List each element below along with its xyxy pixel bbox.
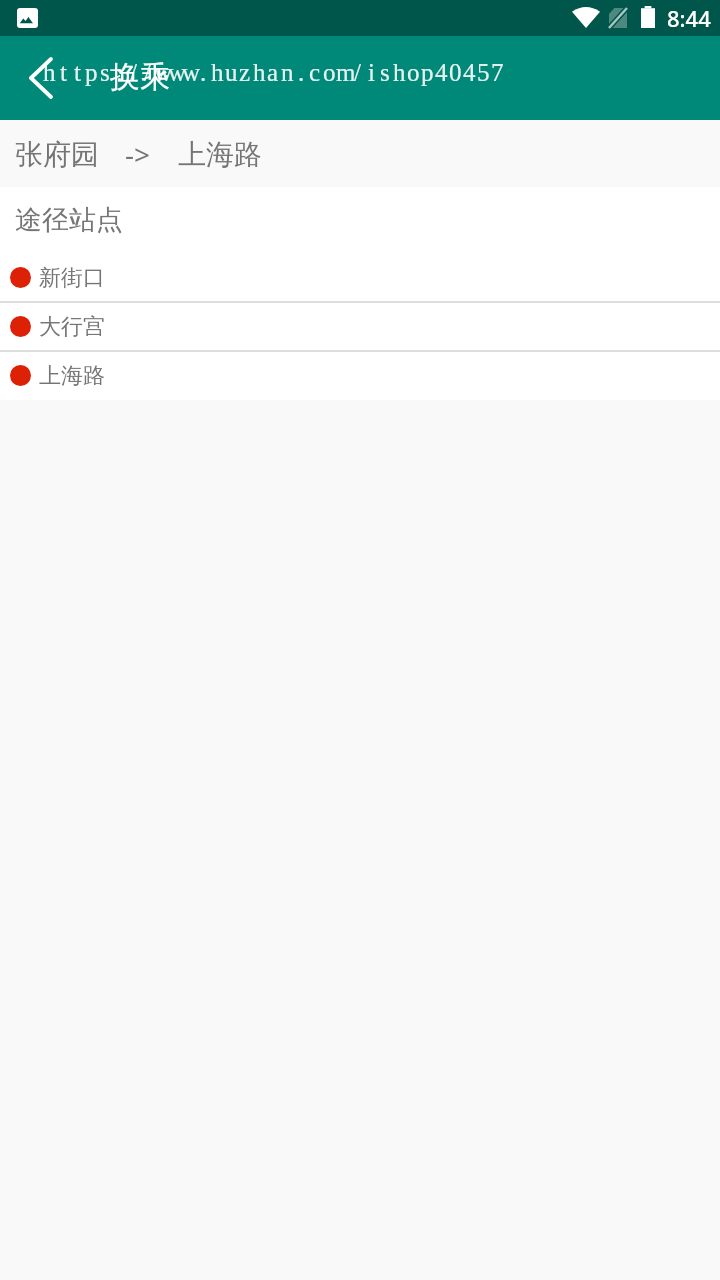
button[interactable]: 张府园 xyxy=(0,120,720,187)
staticText: o xyxy=(407,59,420,87)
button[interactable]: 大行宫 xyxy=(0,302,720,351)
staticText: 4 xyxy=(463,59,476,87)
staticText: h xyxy=(393,59,406,87)
staticText: i xyxy=(368,59,375,87)
staticText: h xyxy=(43,59,56,87)
staticText: 4 xyxy=(435,59,448,87)
staticText: t xyxy=(60,59,67,87)
staticText: h xyxy=(253,59,266,87)
staticText: s xyxy=(100,59,110,87)
staticText: 7 xyxy=(491,59,504,87)
staticText: 新街口 xyxy=(39,264,105,292)
button[interactable]: Back xyxy=(0,36,68,120)
staticText: 张府园 xyxy=(15,137,99,172)
staticText: w xyxy=(168,59,182,87)
staticText: h xyxy=(211,59,224,87)
staticText: w xyxy=(182,59,196,87)
staticText: : xyxy=(116,59,123,87)
staticText: m xyxy=(336,59,350,87)
staticText: . xyxy=(298,59,305,87)
staticText: n xyxy=(281,59,294,87)
staticText: / xyxy=(130,59,137,87)
staticText: p xyxy=(421,59,434,87)
staticText: u xyxy=(225,59,238,87)
staticText: 大行宫 xyxy=(39,313,105,341)
staticText: a xyxy=(267,59,279,87)
staticText: 8:44 xyxy=(667,3,711,33)
staticText: p xyxy=(85,59,98,87)
staticText: 5 xyxy=(477,59,490,87)
staticText: w xyxy=(154,59,168,87)
staticText: / xyxy=(354,59,361,87)
staticText: . xyxy=(200,59,207,87)
staticText: z xyxy=(239,59,251,87)
staticText: o xyxy=(323,59,336,87)
button[interactable]: 上海路 xyxy=(0,351,720,400)
button[interactable]: 新街口 xyxy=(0,253,720,302)
staticText: / xyxy=(144,59,151,87)
staticText: 换乘 xyxy=(110,58,170,96)
staticText: c xyxy=(309,59,321,87)
staticText: 0 xyxy=(449,59,462,87)
staticText: 上海路 xyxy=(178,137,262,172)
staticText: t xyxy=(74,59,81,87)
staticText: s xyxy=(380,59,390,87)
staticText: 途径站点 xyxy=(15,203,123,237)
staticText: 上海路 xyxy=(39,362,105,390)
staticText: -> xyxy=(125,135,151,173)
